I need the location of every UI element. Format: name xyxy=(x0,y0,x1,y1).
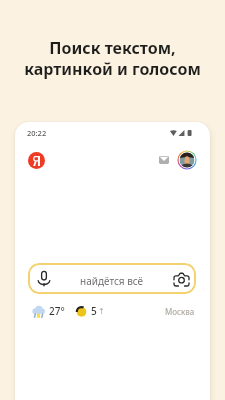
staticText: Поиск текстом, картинкой и голосом xyxy=(24,37,201,80)
staticText: ↑ xyxy=(98,307,105,316)
button[interactable]: Profile xyxy=(177,150,197,170)
staticText: 20:22 xyxy=(27,128,47,138)
staticText: найдётся всё xyxy=(80,274,144,288)
staticText: 27° xyxy=(49,304,65,318)
button[interactable]: Mail xyxy=(157,153,171,167)
staticText: 5 xyxy=(91,304,97,318)
button[interactable]: найдётся всё xyxy=(28,263,196,294)
button[interactable]: Yandex xyxy=(28,152,45,169)
staticText: Москва xyxy=(165,306,195,317)
